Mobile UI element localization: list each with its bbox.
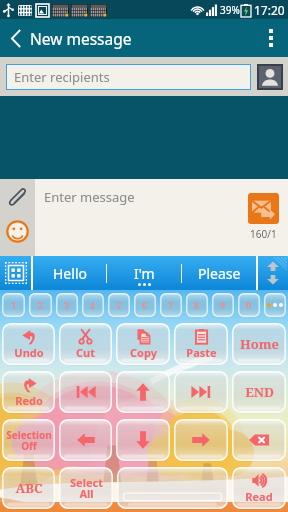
button[interactable] xyxy=(264,293,286,317)
button[interactable]: Back xyxy=(0,19,30,57)
staticText: Selection Off xyxy=(6,428,52,453)
staticText: Enter message xyxy=(44,188,135,206)
button[interactable]: Redo xyxy=(2,371,55,413)
button[interactable]: 9 xyxy=(212,293,234,317)
button[interactable] xyxy=(174,419,228,461)
button[interactable]: 3 xyxy=(56,293,78,317)
button[interactable]: Select contacts xyxy=(258,65,282,89)
staticText: 5 xyxy=(116,299,122,311)
button[interactable] xyxy=(117,467,228,509)
button[interactable]: Paste xyxy=(174,323,228,365)
button[interactable]: 5 xyxy=(108,293,130,317)
button[interactable]: Insert emoticon xyxy=(0,218,35,244)
button[interactable] xyxy=(59,371,112,413)
button[interactable]: END xyxy=(232,371,286,413)
button[interactable]: More options xyxy=(254,19,288,57)
button[interactable]: ABC xyxy=(2,467,55,509)
button[interactable]: Undo xyxy=(2,323,55,365)
button[interactable] xyxy=(116,371,170,413)
staticText: 0 xyxy=(246,299,252,311)
button[interactable]: Copy xyxy=(116,323,170,365)
button[interactable]: Hello xyxy=(33,256,106,290)
button[interactable]: 8 xyxy=(186,293,208,317)
staticText: 9 xyxy=(220,299,226,311)
staticText: Undo xyxy=(14,345,44,360)
button[interactable]: 0 xyxy=(238,293,260,317)
staticText: 8 xyxy=(194,299,200,311)
button[interactable]: Enter recipients xyxy=(7,65,250,89)
button[interactable]: Home xyxy=(232,323,286,365)
staticText: 6 xyxy=(142,299,148,311)
button[interactable]: Attach file xyxy=(0,185,35,209)
staticText: Select All xyxy=(70,475,103,502)
staticText: Home xyxy=(240,335,279,353)
button[interactable]: I'm xyxy=(107,256,181,290)
button[interactable]: Send message xyxy=(248,193,279,224)
staticText: Cut xyxy=(76,345,95,360)
staticText: 3 xyxy=(64,299,70,311)
staticText: ABC xyxy=(15,479,43,497)
staticText: Copy xyxy=(130,345,157,360)
staticText: END xyxy=(245,383,274,401)
button[interactable]: 1 xyxy=(2,293,25,317)
staticText: New message xyxy=(30,28,132,49)
staticText: Redo xyxy=(15,393,43,408)
button[interactable]: Cut xyxy=(59,323,112,365)
staticText: 39% xyxy=(220,3,240,17)
staticText: Read xyxy=(245,489,273,504)
button[interactable]: Expand suggestions xyxy=(258,256,288,290)
staticText: 4 xyxy=(90,299,96,311)
staticText: 7 xyxy=(168,299,174,311)
button[interactable]: 6 xyxy=(134,293,156,317)
button[interactable]: Selection Off xyxy=(2,419,55,461)
staticText: 2 xyxy=(38,299,44,311)
button[interactable]: Select All xyxy=(59,467,113,509)
button[interactable]: Keyboard settings xyxy=(0,256,31,290)
button[interactable]: 4 xyxy=(82,293,104,317)
staticText: Please xyxy=(198,264,241,283)
staticText: Hello xyxy=(53,264,87,283)
staticText: 1 xyxy=(11,299,17,311)
button[interactable]: 7 xyxy=(160,293,182,317)
button[interactable]: Please xyxy=(182,256,256,290)
staticText: 160/1 xyxy=(250,227,277,241)
staticText: I'm xyxy=(134,264,155,283)
button[interactable] xyxy=(232,419,286,461)
button[interactable]: 2 xyxy=(29,293,52,317)
staticText: 17:20 xyxy=(254,2,285,18)
button[interactable] xyxy=(59,419,112,461)
button[interactable] xyxy=(174,371,228,413)
staticText: Paste xyxy=(186,345,217,360)
button[interactable]: Read xyxy=(232,467,286,509)
staticText: Enter recipients xyxy=(14,68,110,86)
button[interactable] xyxy=(116,419,170,461)
